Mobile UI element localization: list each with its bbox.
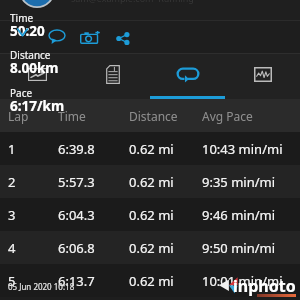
- button[interactable]: Comment: [45, 26, 69, 48]
- staticText: 6:04.3: [58, 206, 95, 224]
- staticText: 9:50 min/mi: [202, 239, 276, 257]
- staticText: 0.62 mi: [129, 239, 174, 257]
- staticText: 9:35 min/mi: [202, 173, 276, 191]
- button[interactable]: Share: [112, 28, 134, 49]
- staticText: 6:13.7: [58, 272, 95, 290]
- button[interactable]: Route: [0, 54, 75, 99]
- staticText: sam@example.com Running: [71, 0, 194, 4]
- button[interactable]: Add photo: [76, 27, 104, 48]
- staticText: 5:57.3: [58, 173, 95, 191]
- button[interactable]: 3: [0, 198, 300, 231]
- staticText: 9:46 min/mi: [202, 206, 276, 224]
- staticText: 50:20: [10, 22, 45, 40]
- staticText: 4: [8, 239, 16, 257]
- staticText: Pace: [10, 86, 33, 100]
- staticText: Distance: [10, 48, 51, 62]
- staticText: 2: [8, 173, 16, 191]
- staticText: 0.62 mi: [129, 140, 174, 158]
- staticText: Avg Pace: [202, 108, 253, 124]
- button[interactable]: 5: [0, 264, 300, 297]
- staticText: 1: [8, 140, 16, 158]
- button[interactable]: Laps: [150, 54, 225, 99]
- staticText: 6:06.8: [58, 239, 95, 257]
- button[interactable]: 1: [0, 132, 300, 165]
- staticText: 6:17/km: [10, 97, 65, 115]
- staticText: 5: [8, 272, 16, 290]
- staticText: 10:43 min/mi: [202, 140, 283, 158]
- staticText: 0.62 mi: [129, 272, 174, 290]
- button[interactable]: 4: [0, 231, 300, 264]
- staticText: Distance: [129, 108, 178, 124]
- staticText: 05 Jun 2020 10:18: [8, 281, 75, 292]
- staticText: 0.62 mi: [129, 173, 174, 191]
- button[interactable]: 2: [0, 165, 300, 198]
- staticText: Time: [10, 11, 34, 25]
- button[interactable]: Charts: [225, 54, 300, 99]
- staticText: 0.62 mi: [129, 206, 174, 224]
- staticText: 6:39.8: [58, 140, 95, 158]
- staticText: 10:01 min/mi: [202, 272, 283, 290]
- staticText: 8.00km: [10, 59, 59, 77]
- button[interactable]: Details: [75, 54, 150, 99]
- staticText: inphoto: [233, 275, 296, 297]
- staticText: 3: [8, 206, 16, 224]
- button[interactable]: Collapse: [13, 24, 32, 41]
- staticText: Time: [58, 108, 86, 124]
- staticText: Lap: [8, 108, 29, 124]
